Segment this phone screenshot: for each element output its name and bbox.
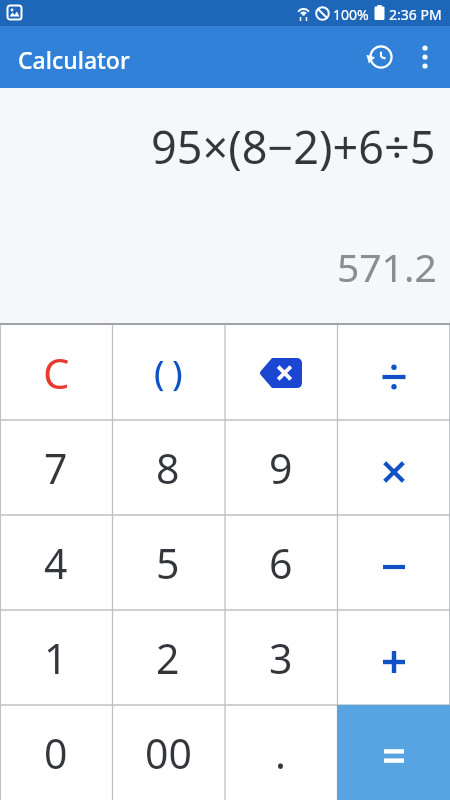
staticText: 100% [333,5,369,24]
button[interactable] [337,420,450,515]
button[interactable]: 00 [112,705,224,800]
staticText: 5 [156,535,180,591]
button[interactable]: 2 [112,610,224,705]
staticText: . [275,725,286,781]
staticText: 7 [44,440,68,496]
button[interactable]: 3 [224,610,337,705]
button[interactable]: 0 [0,705,112,800]
button[interactable]: ( [112,325,224,420]
button[interactable]: 8 [112,420,224,515]
button[interactable]: 7 [0,420,112,515]
staticText: ) [172,350,183,396]
staticText: 4 [44,535,68,591]
button[interactable] [337,515,450,610]
staticText: 00 [145,725,192,781]
staticText: Calculator [18,44,130,75]
button[interactable]: 6 [224,515,337,610]
staticText: 9 [269,440,293,496]
button[interactable]: . [224,705,337,800]
staticText: 3 [269,630,293,686]
staticText: 95×(8−2)+6÷5 [151,116,436,177]
button[interactable]: 5 [112,515,224,610]
button[interactable] [337,610,450,705]
button[interactable] [224,325,337,420]
button[interactable]: C [0,325,112,420]
staticText: 2:36 PM [389,5,442,24]
staticText: 0 [44,725,68,781]
staticText: 2 [156,630,180,686]
button[interactable]: 4 [0,515,112,610]
button[interactable]: 9 [224,420,337,515]
button[interactable] [337,325,450,420]
button[interactable] [337,705,450,800]
staticText: ( [154,350,165,396]
staticText: C [43,344,70,401]
button[interactable]: 1 [0,610,112,705]
button[interactable] [358,35,402,79]
staticText: 6 [269,535,293,591]
button[interactable] [407,35,445,79]
staticText: 571.2 [337,240,437,293]
staticText: 8 [156,440,180,496]
staticText: 1 [44,630,68,686]
